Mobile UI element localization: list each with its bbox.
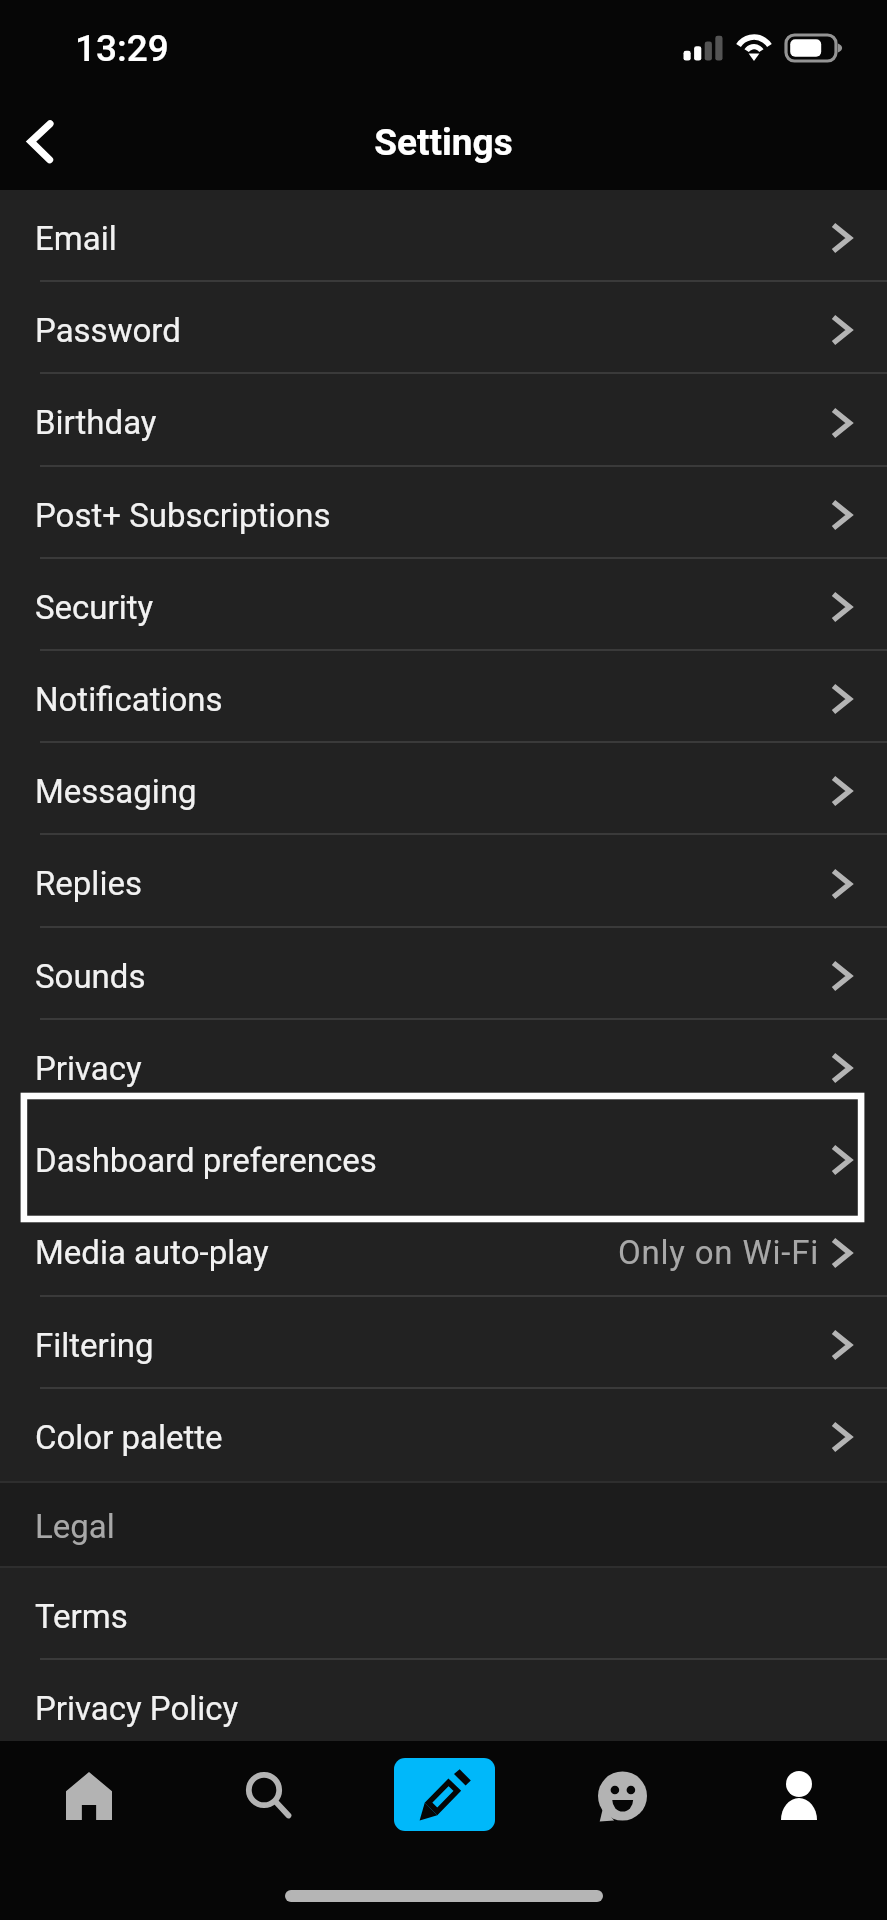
button[interactable]: Terms: [0, 1568, 887, 1660]
staticText: Privacy: [35, 1049, 142, 1088]
staticText: Sounds: [35, 957, 146, 996]
staticText: Legal: [35, 1507, 115, 1546]
button[interactable]: Sounds: [0, 928, 887, 1020]
staticText: Terms: [35, 1597, 128, 1636]
button[interactable]: Security: [0, 559, 887, 651]
button[interactable]: Password: [0, 282, 887, 374]
staticText: Dashboard preferences: [35, 1141, 377, 1180]
button[interactable]: Color palette: [0, 1389, 887, 1481]
staticText: Only on Wi-Fi: [618, 1233, 820, 1272]
button[interactable]: Search: [178, 1741, 356, 1851]
staticText: 13:29: [75, 27, 169, 70]
button[interactable]: New post: [394, 1758, 495, 1831]
button[interactable]: Privacy: [0, 1020, 887, 1112]
staticText: Birthday: [35, 403, 157, 442]
staticText: Password: [35, 311, 181, 350]
staticText: Media auto-play: [35, 1233, 269, 1272]
staticText: Settings: [0, 121, 887, 164]
staticText: Privacy Policy: [35, 1689, 239, 1728]
staticText: Security: [35, 588, 154, 627]
button[interactable]: Email: [0, 190, 887, 282]
staticText: Color palette: [35, 1418, 223, 1457]
button[interactable]: Replies: [0, 835, 887, 928]
button[interactable]: Filtering: [0, 1297, 887, 1389]
button[interactable]: Privacy Policy: [0, 1660, 887, 1741]
button[interactable]: Post+ Subscriptions: [0, 467, 887, 559]
button[interactable]: Media auto-play: [0, 1204, 887, 1297]
staticText: Email: [35, 219, 117, 258]
button[interactable]: Notifications: [0, 651, 887, 743]
button[interactable]: Messages: [533, 1741, 710, 1851]
staticText: Replies: [35, 864, 142, 903]
staticText: Notifications: [35, 680, 223, 719]
staticText: Messaging: [35, 772, 197, 811]
button[interactable]: Back: [0, 97, 84, 189]
button[interactable]: Messaging: [0, 743, 887, 835]
button[interactable]: Home: [0, 1741, 178, 1851]
button[interactable]: Dashboard preferences: [0, 1112, 887, 1204]
button[interactable]: Birthday: [0, 374, 887, 467]
button[interactable]: Account: [710, 1741, 887, 1851]
staticText: Post+ Subscriptions: [35, 496, 331, 535]
staticText: Filtering: [35, 1326, 154, 1365]
